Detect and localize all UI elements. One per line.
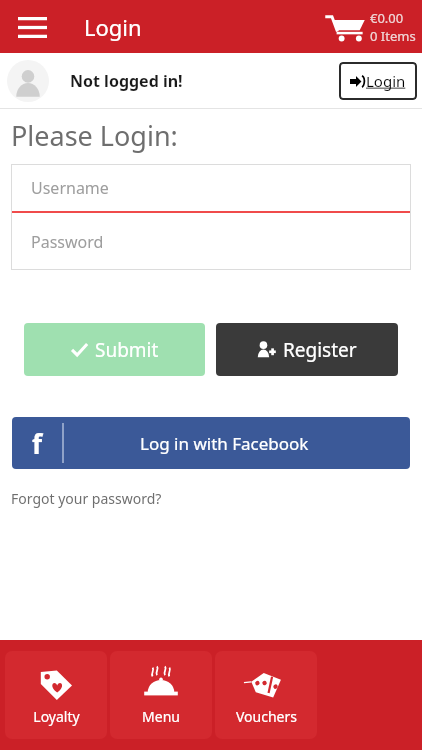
staticText: Vouchers <box>236 707 297 726</box>
button[interactable]: Password <box>11 213 411 270</box>
button[interactable]: Shopping cart, 0 items <box>324 9 416 45</box>
button[interactable]: Login <box>339 62 417 100</box>
button[interactable]: Open navigation menu <box>8 3 56 51</box>
staticText: f <box>32 426 43 461</box>
button[interactable]: Submit <box>24 323 205 376</box>
button[interactable]: Vouchers <box>215 651 317 739</box>
staticText: Submit <box>95 337 159 363</box>
button[interactable]: Username <box>11 164 411 211</box>
staticText: €0.00 <box>370 9 404 27</box>
button[interactable]: Register <box>216 323 398 376</box>
staticText: Loyalty <box>33 707 80 726</box>
staticText: Log in with Facebook <box>140 432 309 455</box>
staticText: Please Login: <box>11 117 178 154</box>
staticText: Password <box>31 231 104 253</box>
staticText: Login <box>366 71 406 91</box>
staticText: 0 Items <box>370 27 416 45</box>
staticText: Username <box>31 177 109 199</box>
staticText: Not logged in! <box>70 70 183 92</box>
button[interactable]: Forgot your password? <box>11 489 162 508</box>
staticText: Register <box>283 337 357 363</box>
button[interactable]: Menu <box>110 651 212 739</box>
staticText: Menu <box>142 707 180 726</box>
staticText: Login <box>84 12 142 42</box>
button[interactable]: f <box>12 417 410 469</box>
button[interactable]: Loyalty <box>5 651 107 739</box>
